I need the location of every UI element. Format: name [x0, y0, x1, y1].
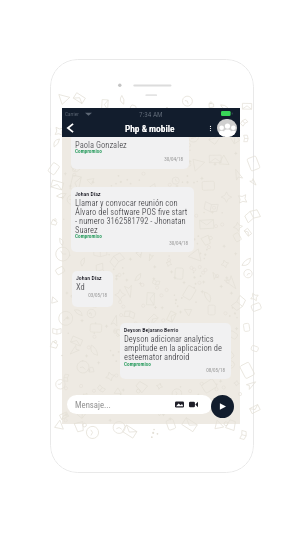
staticText: Johan Díaz [76, 275, 102, 282]
staticText: Php & mobile [125, 123, 175, 134]
staticText: Deyson adicionar analytics amplitude en … [124, 334, 222, 362]
button[interactable]: Back [62, 120, 78, 136]
staticText: Carrier [65, 111, 79, 117]
staticText: 03/05/18 [72, 292, 107, 298]
staticText: Llamar y convocar reunión con Álvaro del… [75, 198, 188, 235]
staticText: Compromiso [124, 361, 151, 367]
button[interactable]: Deyson Bejarano Berrio [120, 323, 231, 379]
staticText: Paola Gonzalez [75, 140, 127, 150]
staticText: Johan Díaz [75, 191, 101, 198]
button[interactable]: Johan Díaz [72, 271, 113, 307]
button[interactable]: More options [205, 123, 216, 134]
staticText: 30/04/18 [71, 156, 183, 162]
staticText: Xd [76, 282, 85, 292]
button[interactable]: Send [211, 395, 234, 418]
button[interactable]: Paola Gonzalez [71, 134, 189, 169]
staticText: 7:34 AM [139, 110, 163, 118]
staticText: 30/04/18 [71, 240, 188, 246]
staticText: 08/05/18 [120, 367, 225, 373]
button[interactable]: Johan Díaz [71, 187, 194, 252]
staticText: Compromiso [75, 148, 102, 154]
staticText: Mensaje... [75, 400, 111, 410]
button[interactable]: Mensaje... [67, 395, 212, 414]
button[interactable]: Group avatar [217, 119, 237, 137]
staticText: Deyson Bejarano Berrio [124, 327, 179, 334]
button[interactable]: Attach photo [174, 399, 185, 410]
button[interactable]: Video call [188, 399, 199, 410]
staticText: Compromiso [75, 233, 102, 239]
